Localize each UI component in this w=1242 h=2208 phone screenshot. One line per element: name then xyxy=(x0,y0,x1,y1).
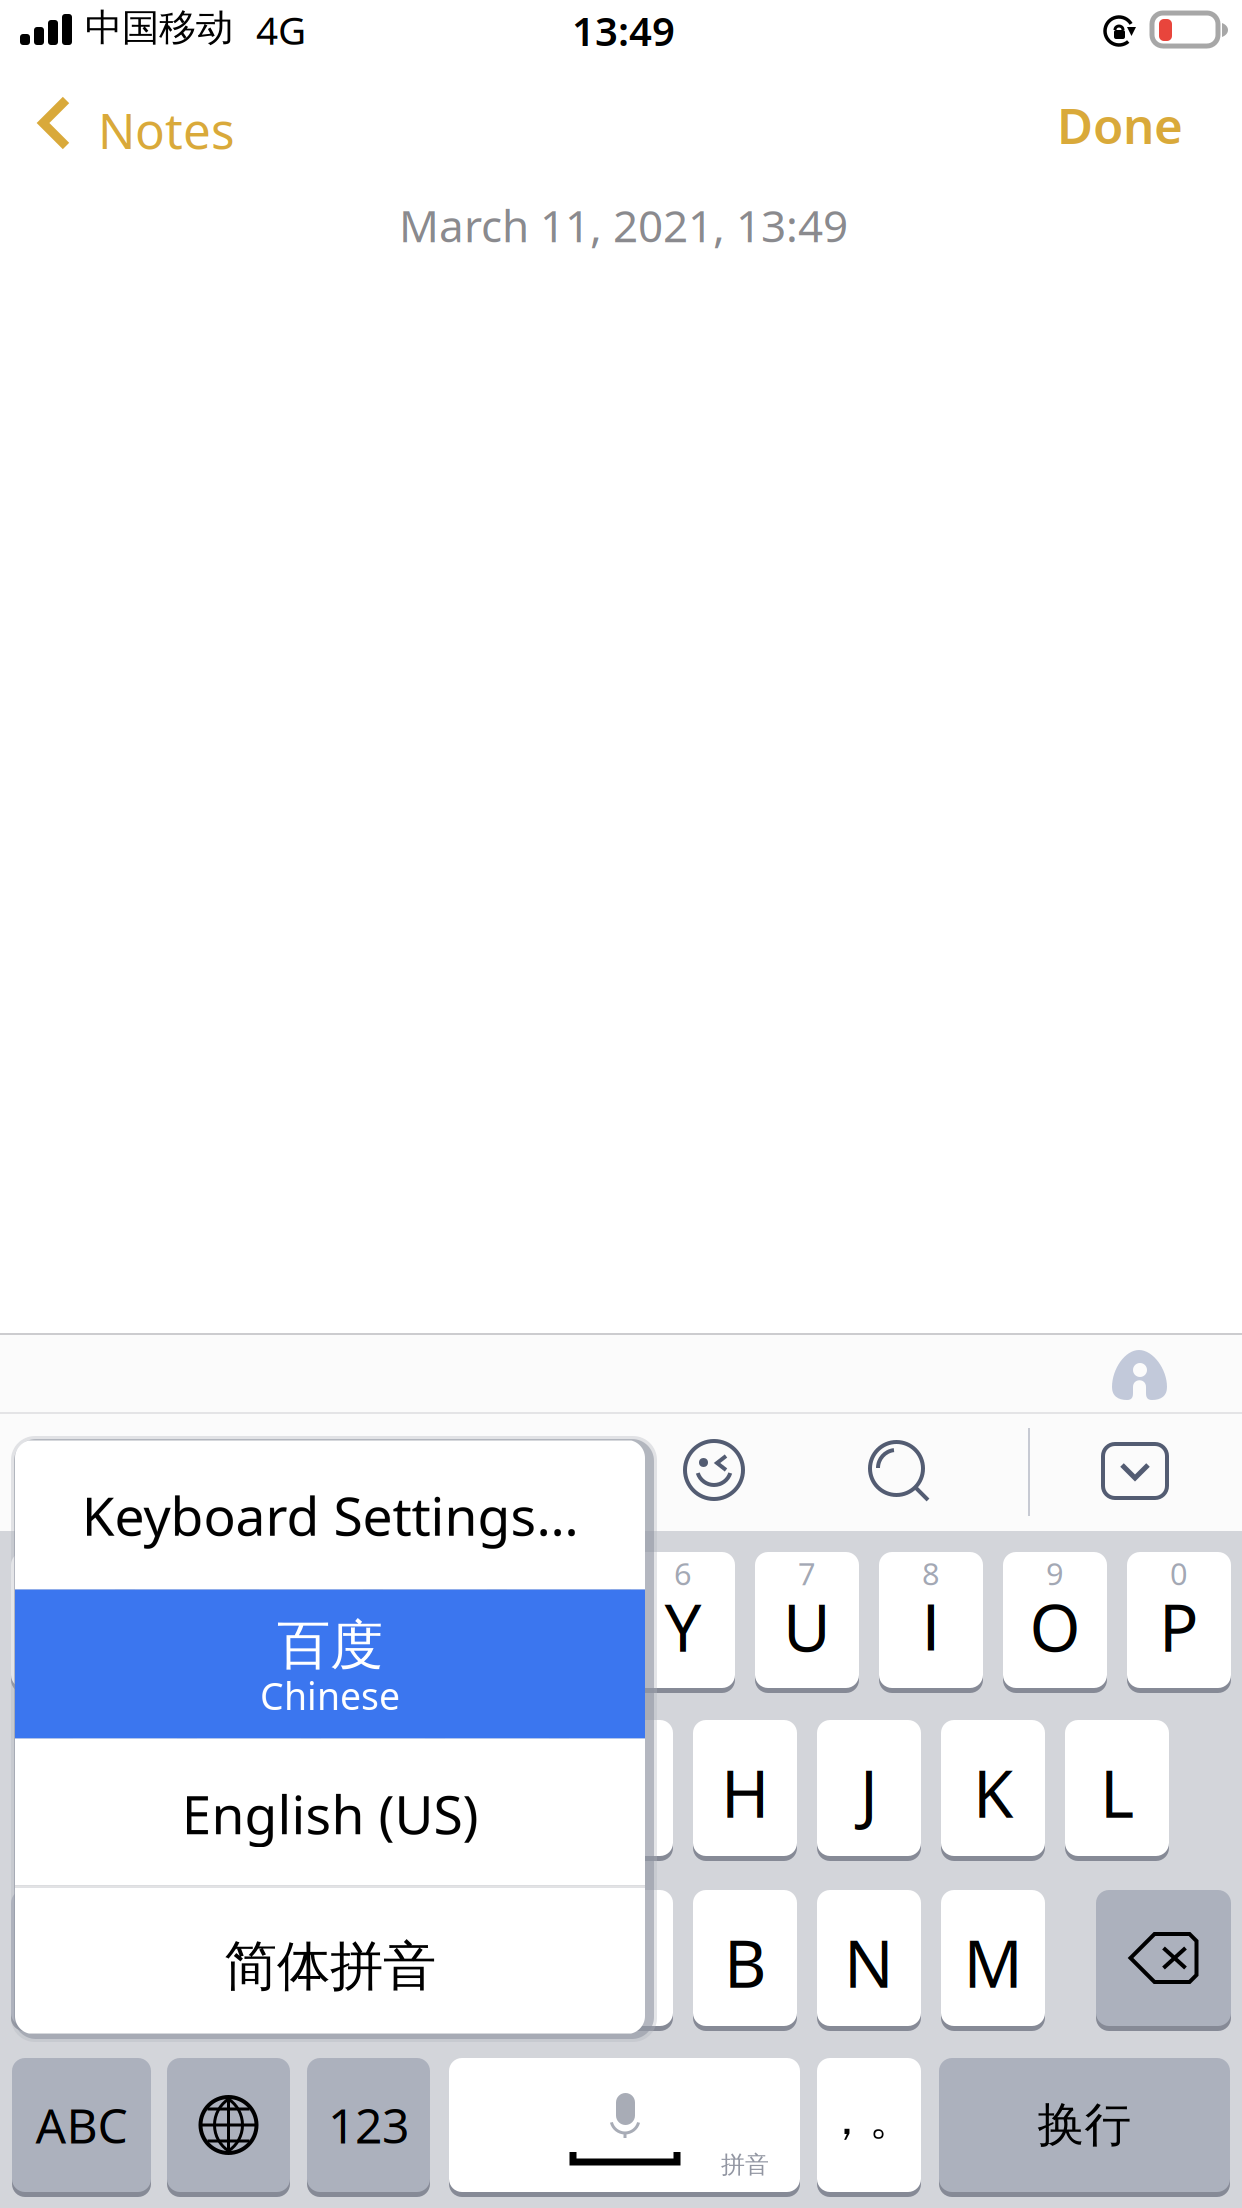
button[interactable]: C xyxy=(0,0,1242,2208)
staticText: P xyxy=(1159,1583,1199,1670)
button[interactable]: A xyxy=(0,0,1242,2208)
button[interactable]: ，。 xyxy=(0,0,1242,2208)
staticText: N xyxy=(844,1919,894,2006)
staticText: Y xyxy=(664,1583,701,1670)
button[interactable]: F xyxy=(0,0,1242,2208)
button[interactable]: 换行 xyxy=(0,0,1242,2208)
button[interactable]: B xyxy=(0,0,1242,2208)
button[interactable]: Space xyxy=(0,0,1242,2208)
staticText: E xyxy=(293,1583,329,1670)
staticText: L xyxy=(1100,1749,1134,1836)
staticText: O xyxy=(1029,1583,1080,1670)
button[interactable]: Delete xyxy=(0,0,1242,2208)
button[interactable]: 123 xyxy=(0,0,1242,2208)
staticText: 拼音 xyxy=(721,2150,769,2179)
staticText: K xyxy=(973,1749,1013,1836)
button[interactable]: D xyxy=(0,0,1242,2208)
button[interactable]: Keyboard Settings… xyxy=(15,1440,645,1589)
staticText: 4 xyxy=(426,1553,444,1594)
button[interactable]: 0 xyxy=(0,0,1242,2208)
button[interactable]: H xyxy=(0,0,1242,2208)
button[interactable]: 2 xyxy=(0,0,1242,2208)
button[interactable]: J xyxy=(0,0,1242,2208)
staticText: 123 xyxy=(328,2093,409,2157)
button[interactable]: X xyxy=(0,0,1242,2208)
staticText: Keyboard Settings… xyxy=(81,1480,578,1550)
staticText: March 11, 2021, 13:49 xyxy=(399,196,848,254)
button[interactable]: Next keyboard xyxy=(0,0,1242,2208)
staticText: Z xyxy=(230,1919,267,2006)
button[interactable]: N xyxy=(0,0,1242,2208)
staticText: S xyxy=(231,1749,267,1836)
button[interactable]: Notes xyxy=(0,76,300,172)
staticText: X xyxy=(354,1919,392,2006)
staticText: 5 xyxy=(550,1553,568,1594)
staticText: 百度 xyxy=(277,1613,383,1678)
staticText: Chinese xyxy=(260,1671,400,1720)
button[interactable]: 简体拼音 xyxy=(15,1887,645,2033)
button[interactable]: Emoji xyxy=(0,1414,746,1502)
button[interactable]: Hide keyboard xyxy=(0,1414,1167,1498)
staticText: 6 xyxy=(674,1553,692,1594)
staticText: H xyxy=(721,1749,769,1836)
button[interactable]: Z xyxy=(0,0,1242,2208)
button[interactable]: L xyxy=(0,0,1242,2208)
staticText: 1 xyxy=(54,1553,72,1594)
button[interactable]: S xyxy=(0,0,1242,2208)
button[interactable]: K xyxy=(0,0,1242,2208)
staticText: U xyxy=(783,1583,831,1670)
button[interactable]: 6 xyxy=(0,0,1242,2208)
button[interactable]: M xyxy=(0,0,1242,2208)
staticText: 2 xyxy=(178,1553,196,1594)
staticText: J xyxy=(860,1749,878,1836)
button[interactable]: 9 xyxy=(0,0,1242,2208)
staticText: D xyxy=(349,1749,397,1836)
staticText: 3 xyxy=(302,1553,320,1594)
staticText: 换行 xyxy=(1037,2096,1131,2154)
staticText: B xyxy=(724,1919,766,2006)
staticText: I xyxy=(922,1590,940,1667)
staticText: T xyxy=(541,1583,577,1670)
button[interactable]: ABC xyxy=(0,0,1242,2208)
staticText: 9 xyxy=(1046,1553,1064,1594)
button[interactable]: 百度 xyxy=(15,1589,645,1738)
button[interactable]: Done xyxy=(0,76,1242,172)
button[interactable]: 4 xyxy=(0,0,1242,2208)
staticText: 简体拼音 xyxy=(224,1934,436,1999)
staticText: 13:49 xyxy=(572,4,675,57)
button[interactable]: 8 xyxy=(0,0,1242,2208)
button[interactable]: 1 xyxy=(0,0,1242,2208)
staticText: English (US) xyxy=(181,1778,478,1849)
staticText: Notes xyxy=(98,97,235,162)
staticText: 0 xyxy=(1170,1553,1188,1594)
button[interactable]: V xyxy=(0,0,1242,2208)
button[interactable]: Shift xyxy=(0,0,1242,2208)
button[interactable]: Search xyxy=(0,1414,932,1504)
staticText: W xyxy=(156,1583,217,1670)
staticText: Q xyxy=(37,1583,88,1670)
staticText: M xyxy=(963,1919,1022,2006)
button[interactable]: 5 xyxy=(0,0,1242,2208)
staticText: 7 xyxy=(798,1553,816,1594)
staticText: 4G xyxy=(256,4,306,55)
button[interactable]: English (US) xyxy=(15,1738,645,1885)
staticText: ABC xyxy=(35,2093,127,2157)
button[interactable]: G xyxy=(0,0,1242,2208)
staticText: 8 xyxy=(922,1553,940,1594)
staticText: ，。 xyxy=(824,2091,914,2147)
staticText: Done xyxy=(1057,92,1183,157)
staticText: R xyxy=(414,1583,455,1670)
staticText: 中国移动 xyxy=(85,5,233,51)
button[interactable]: 3 xyxy=(0,0,1242,2208)
button[interactable]: 7 xyxy=(0,0,1242,2208)
